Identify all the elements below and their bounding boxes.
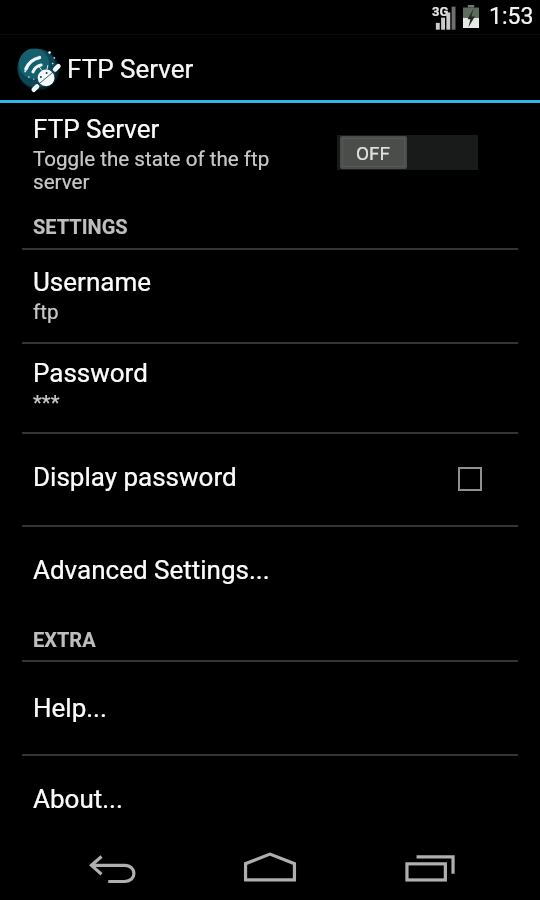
staticText: ftp (33, 300, 59, 324)
button[interactable]: OFF (337, 135, 478, 170)
button[interactable]: About... (0, 756, 540, 850)
button[interactable]: Back (74, 833, 154, 900)
button[interactable]: Display password (0, 434, 540, 525)
staticText: 1:53 (489, 3, 534, 30)
staticText: Advanced Settings... (33, 555, 270, 585)
button[interactable]: Advanced Settings... (0, 527, 540, 612)
staticText: 3G (432, 4, 449, 19)
staticText: Password (33, 358, 148, 388)
staticText: Help... (33, 693, 107, 723)
staticText: About... (33, 784, 123, 814)
staticText: SETTINGS (33, 215, 128, 238)
button[interactable]: Home (230, 831, 310, 900)
staticText: Username (33, 267, 151, 297)
staticText: FTP Server (67, 54, 194, 84)
button[interactable]: FTP Server (0, 102, 540, 204)
staticText: Toggle the state of the ftp server (33, 147, 313, 194)
staticText: FTP Server (33, 114, 160, 144)
button[interactable]: FTP Server (0, 36, 540, 102)
button[interactable]: Password (0, 344, 540, 432)
staticText: EXTRA (33, 628, 96, 651)
staticText: OFF (356, 142, 391, 164)
button[interactable]: Recent apps (390, 832, 470, 900)
staticText: *** (33, 391, 60, 415)
staticText: Display password (33, 462, 458, 492)
button[interactable]: Username (0, 250, 540, 342)
button[interactable]: Help... (0, 662, 540, 754)
